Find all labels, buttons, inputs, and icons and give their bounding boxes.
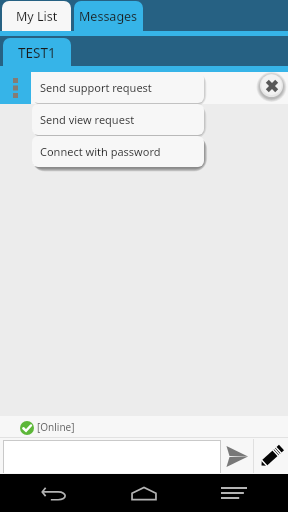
button[interactable]: TEST1 [3,38,71,67]
button[interactable]: More options [0,72,31,104]
button[interactable]: Home [109,474,179,512]
button[interactable]: Connect with password [32,136,204,167]
staticText: My List [16,8,58,25]
button[interactable]: Recent apps [199,474,269,512]
button[interactable]: Send view request [32,104,204,135]
staticText: TEST1 [18,44,56,62]
button[interactable]: Close [258,72,285,99]
button[interactable]: Edit [254,438,288,474]
button[interactable]: Send support request [32,72,204,103]
staticText: Connect with password [40,144,161,159]
staticText: Messages [79,8,138,25]
staticText: [Online] [37,420,75,434]
button[interactable]: Messages [74,1,143,31]
button[interactable]: Back [20,474,90,512]
staticText: Send support request [40,80,152,95]
staticText: Send view request [40,112,135,127]
button[interactable]: Send [221,438,253,474]
button[interactable]: My List [2,1,71,31]
